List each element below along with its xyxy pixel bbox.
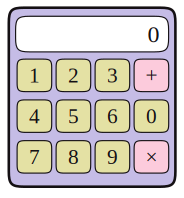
staticText: 7 (29, 145, 40, 169)
button[interactable]: 5 (56, 100, 91, 132)
button[interactable]: 4 (17, 100, 52, 132)
button[interactable]: 1 (17, 59, 52, 92)
staticText: + (145, 64, 157, 87)
staticText: 4 (29, 104, 40, 128)
staticText: 6 (107, 104, 118, 128)
button[interactable]: 9 (95, 141, 130, 173)
button[interactable]: 8 (56, 141, 91, 173)
button[interactable]: 7 (17, 141, 52, 173)
staticText: 9 (107, 145, 118, 169)
staticText: 5 (68, 104, 79, 128)
staticText: 2 (68, 64, 79, 87)
button[interactable]: 3 (95, 59, 130, 92)
button[interactable]: 2 (56, 59, 91, 92)
staticText: × (145, 145, 157, 169)
staticText: 0 (148, 21, 160, 47)
staticText: 0 (146, 104, 157, 128)
button[interactable]: 0 (134, 100, 169, 132)
staticText: 1 (29, 64, 40, 87)
button[interactable]: × (134, 141, 169, 173)
staticText: 8 (68, 145, 79, 169)
button[interactable]: + (134, 59, 169, 92)
button[interactable]: 6 (95, 100, 130, 132)
staticText: 3 (107, 64, 118, 87)
